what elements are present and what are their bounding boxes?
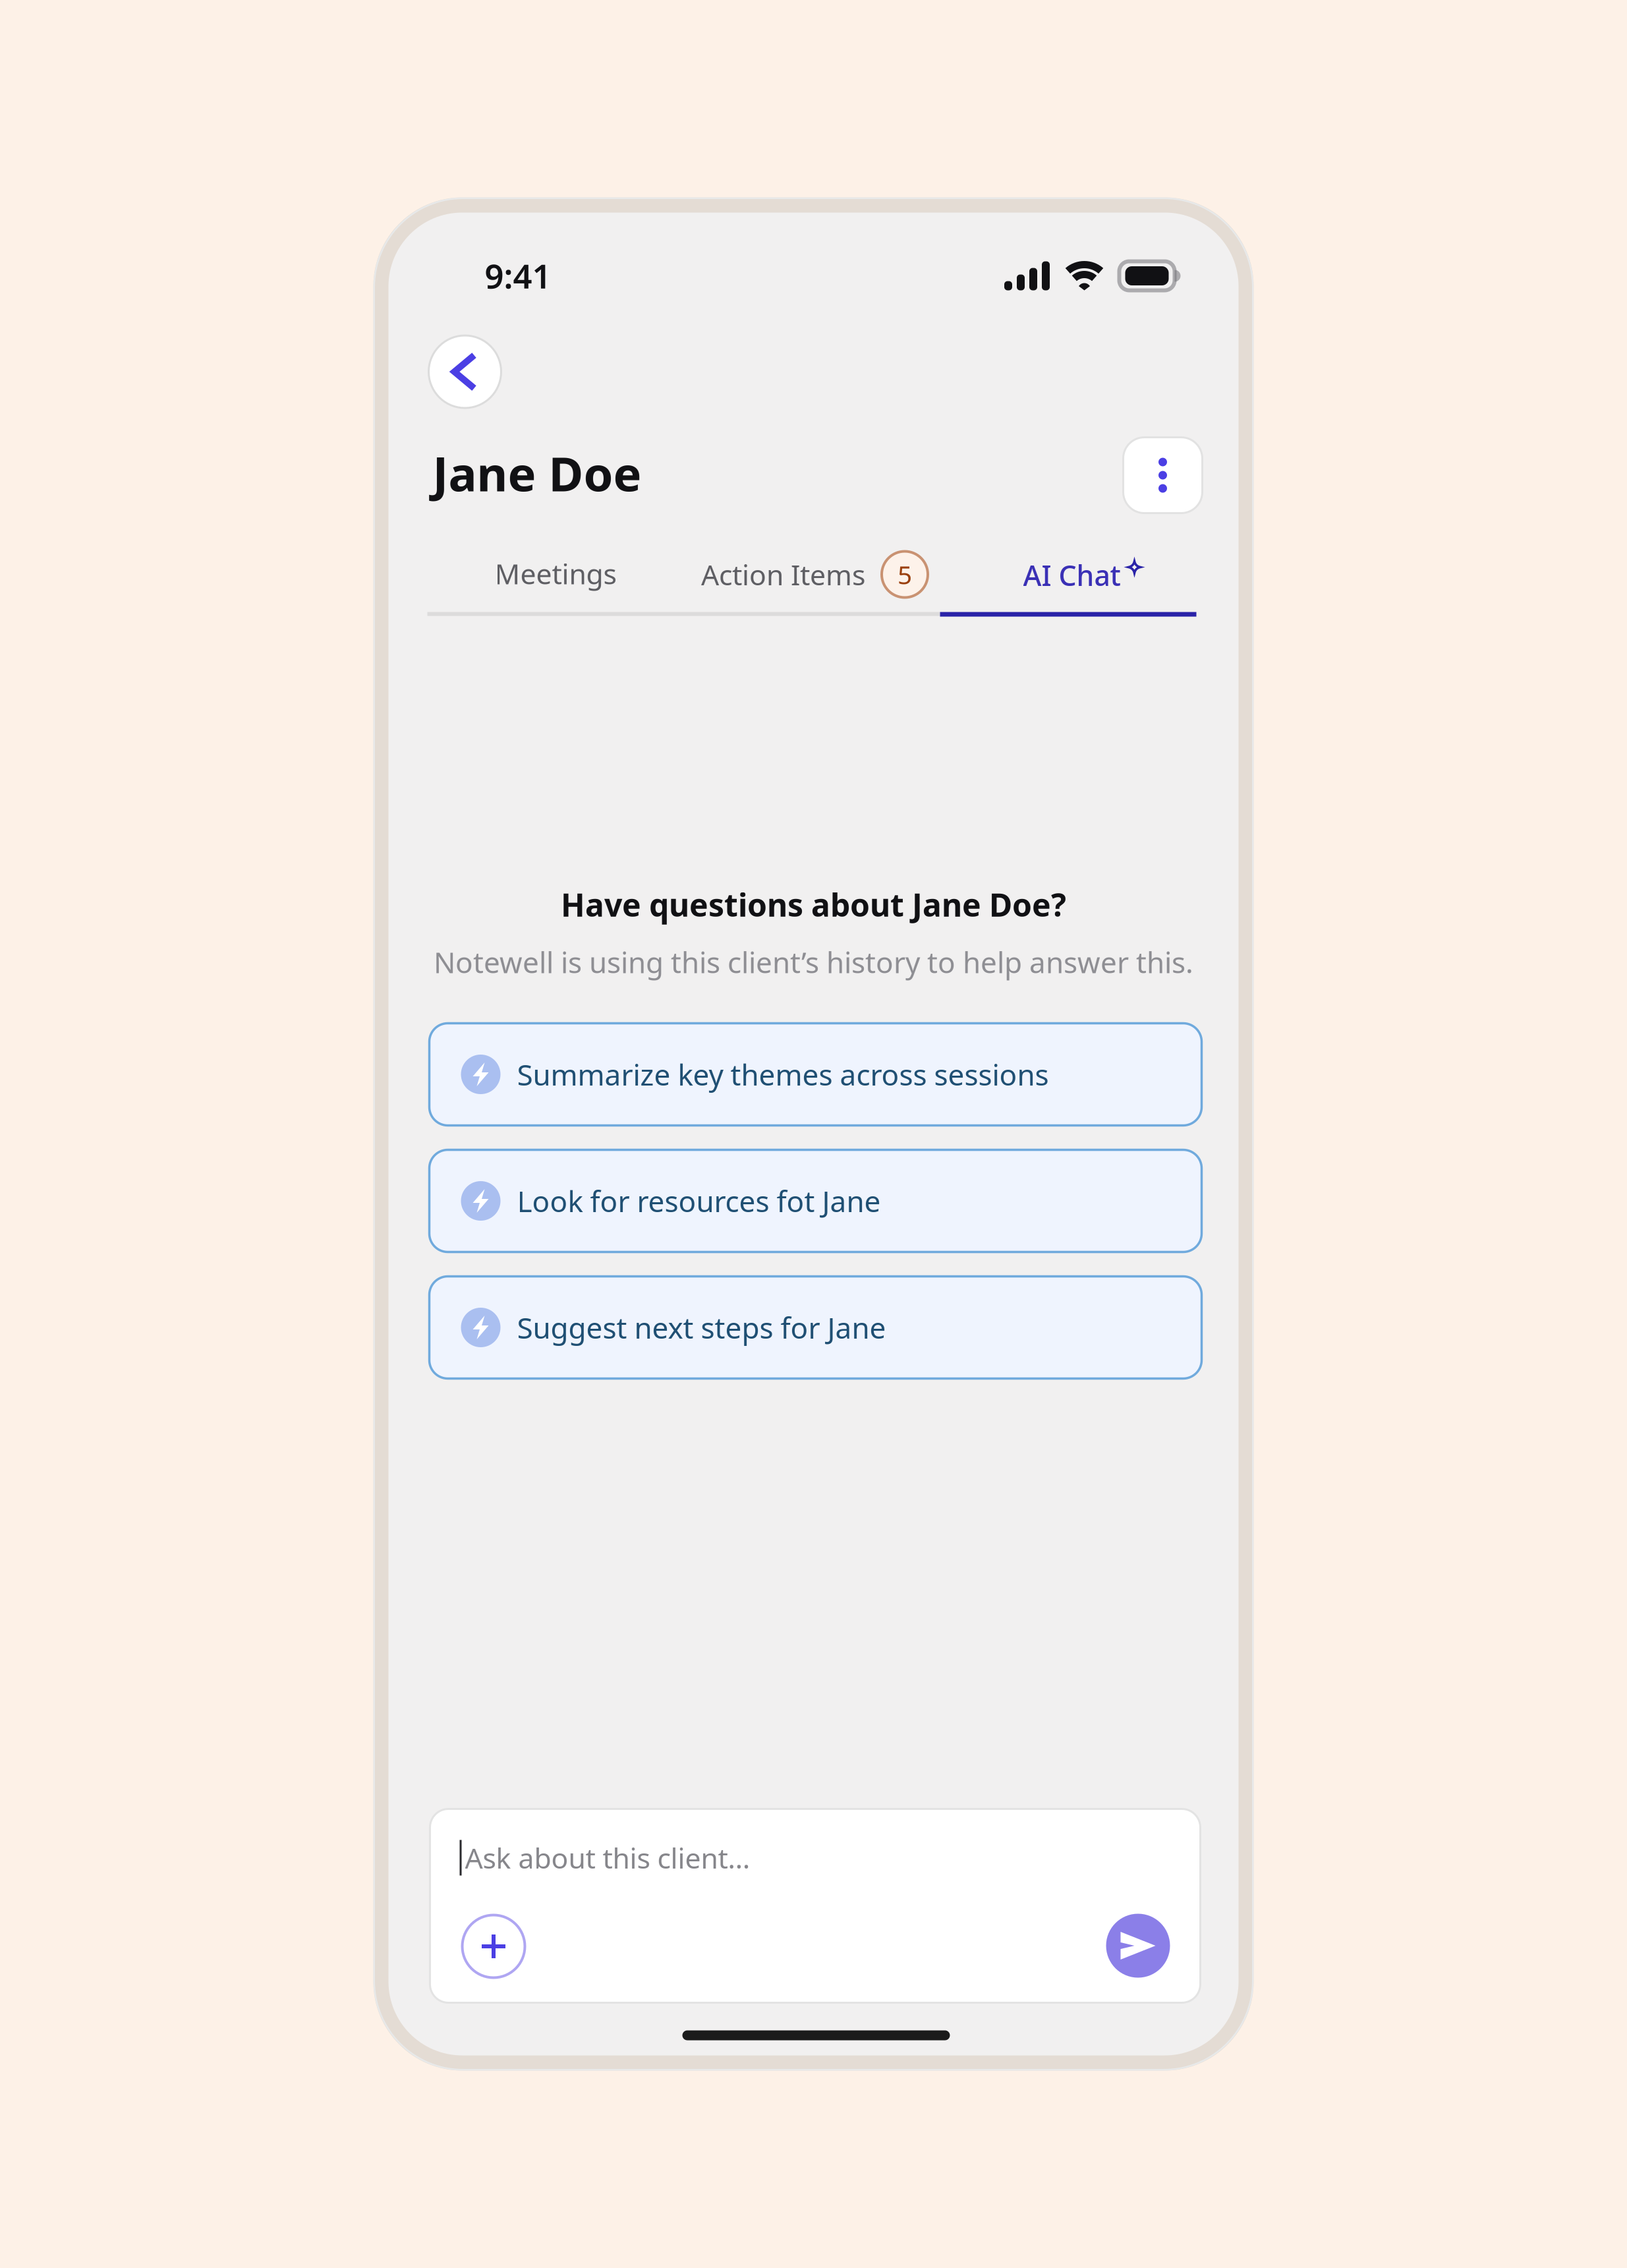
button[interactable]: Add attachment [462, 1915, 525, 1978]
button[interactable]: More options [1123, 437, 1202, 513]
button[interactable]: Summarize key themes across sessions [429, 1023, 1202, 1125]
staticText: 9:41 [485, 253, 551, 298]
staticText: 5 [898, 557, 912, 592]
staticText: Ask about this client… [465, 1839, 750, 1877]
button[interactable]: Meetings [427, 540, 684, 619]
staticText: Action Items [701, 555, 865, 594]
button[interactable]: Action Items [684, 543, 940, 616]
staticText: Summarize key themes across sessions [517, 1055, 1049, 1094]
staticText: Meetings [495, 554, 616, 593]
button[interactable]: Look for resources fot Jane [429, 1150, 1202, 1252]
button[interactable]: Back [429, 334, 501, 409]
button[interactable]: Suggest next steps for Jane [429, 1276, 1202, 1379]
staticText: Have questions about Jane Doe? [561, 883, 1066, 926]
staticText: Jane Doe [433, 441, 642, 505]
staticText: Suggest next steps for Jane [517, 1308, 886, 1347]
staticText: Notewell is using this client’s history … [434, 942, 1193, 982]
button[interactable]: Send [1106, 1914, 1170, 1978]
button[interactable]: AI Chat [940, 547, 1196, 612]
staticText: AI Chat [1023, 556, 1121, 594]
staticText: Look for resources fot Jane [517, 1181, 881, 1221]
